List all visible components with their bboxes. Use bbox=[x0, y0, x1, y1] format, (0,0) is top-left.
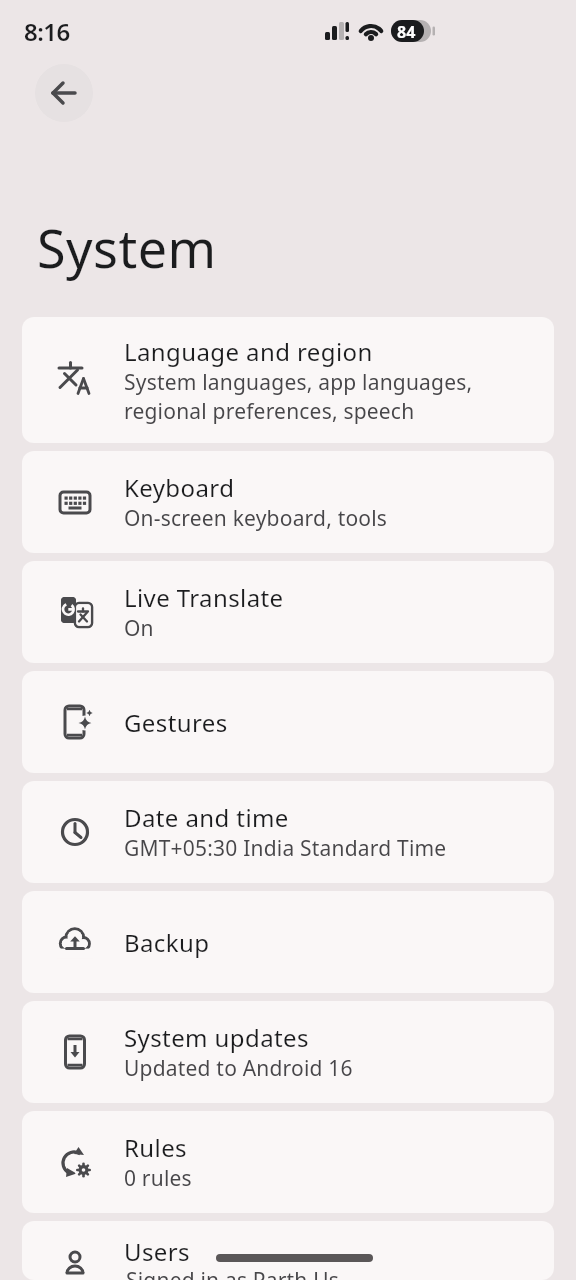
button[interactable]: Live Translate bbox=[22, 561, 554, 663]
staticText: regional preferences, speech bbox=[124, 397, 415, 426]
staticText: On bbox=[124, 614, 154, 643]
staticText: GMT+05:30 India Standard Time bbox=[124, 834, 447, 863]
staticText: Date and time bbox=[124, 801, 289, 834]
staticText: Signed in as Parth Us bbox=[126, 1266, 426, 1280]
button[interactable]: Date and time bbox=[22, 781, 554, 883]
staticText: Users bbox=[124, 1235, 190, 1268]
staticText: Language and region bbox=[124, 335, 373, 368]
staticText: Updated to Android 16 bbox=[124, 1054, 353, 1083]
staticText: Gestures bbox=[124, 706, 228, 739]
staticText: Rules bbox=[124, 1131, 187, 1164]
button[interactable]: Keyboard bbox=[22, 451, 554, 553]
button[interactable]: Backup bbox=[22, 891, 554, 993]
button[interactable]: Gestures bbox=[22, 671, 554, 773]
staticText: On-screen keyboard, tools bbox=[124, 504, 388, 533]
button[interactable] bbox=[35, 64, 93, 122]
button[interactable]: System updates bbox=[22, 1001, 554, 1103]
staticText: Live Translate bbox=[124, 581, 284, 614]
staticText: 8:16 bbox=[24, 15, 70, 48]
staticText: Keyboard bbox=[124, 471, 235, 504]
staticText: 0 rules bbox=[124, 1164, 192, 1193]
staticText: System bbox=[37, 212, 217, 283]
staticText: System languages, app languages, bbox=[124, 368, 473, 397]
staticText: System updates bbox=[124, 1021, 309, 1054]
button[interactable]: Users bbox=[22, 1221, 554, 1280]
button[interactable]: Rules bbox=[22, 1111, 554, 1213]
staticText: Backup bbox=[124, 926, 210, 959]
staticText: 84 bbox=[397, 21, 416, 42]
button[interactable]: Language and region bbox=[22, 317, 554, 443]
